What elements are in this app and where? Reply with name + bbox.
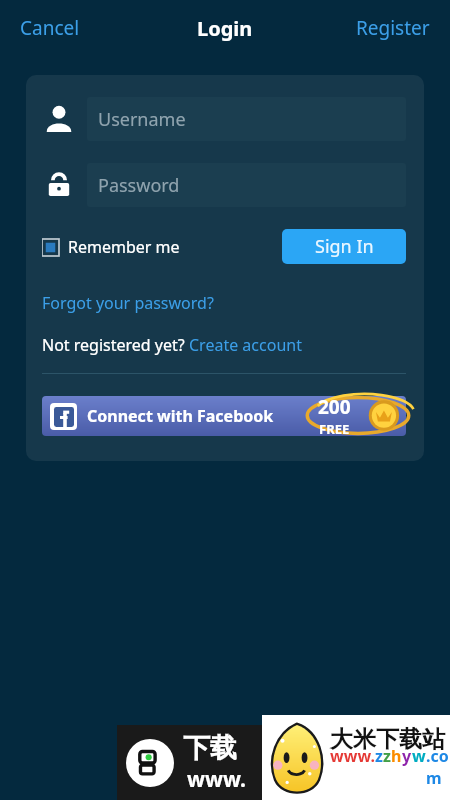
staticText: 200 (318, 394, 351, 420)
staticText: .com (426, 745, 450, 789)
button[interactable]: Remember me (42, 232, 180, 262)
staticText: Register (356, 15, 430, 41)
staticText: 大米下载站 (330, 725, 445, 754)
button[interactable]: Username (87, 97, 406, 141)
staticText: h (391, 745, 402, 767)
staticText: Sign In (315, 234, 374, 259)
staticText: z (375, 745, 383, 767)
staticText: 下载 (183, 731, 237, 765)
button[interactable]: Connect with Facebook (42, 396, 406, 436)
button[interactable]: Create account (189, 334, 302, 356)
staticText: www. (187, 765, 246, 794)
staticText: FREE (319, 420, 350, 438)
staticText: Remember me (68, 236, 180, 258)
staticText: Not registered yet? (42, 334, 189, 356)
staticText: w (412, 745, 426, 767)
staticText: Username (98, 107, 186, 132)
button[interactable]: Forgot your password? (42, 290, 214, 316)
staticText: z (383, 745, 391, 767)
staticText: Create account (189, 334, 302, 356)
staticText: y (402, 745, 412, 767)
button[interactable]: Sign In (282, 229, 406, 264)
button[interactable]: Cancel (8, 7, 92, 49)
staticText: www. (330, 745, 375, 767)
staticText: Connect with Facebook (87, 405, 274, 427)
staticText: Cancel (20, 15, 80, 41)
button[interactable]: Register (344, 7, 442, 49)
button[interactable]: Password (87, 163, 406, 207)
staticText: Password (98, 173, 180, 198)
staticText: Login (197, 15, 253, 42)
staticText: Forgot your password? (42, 292, 214, 314)
